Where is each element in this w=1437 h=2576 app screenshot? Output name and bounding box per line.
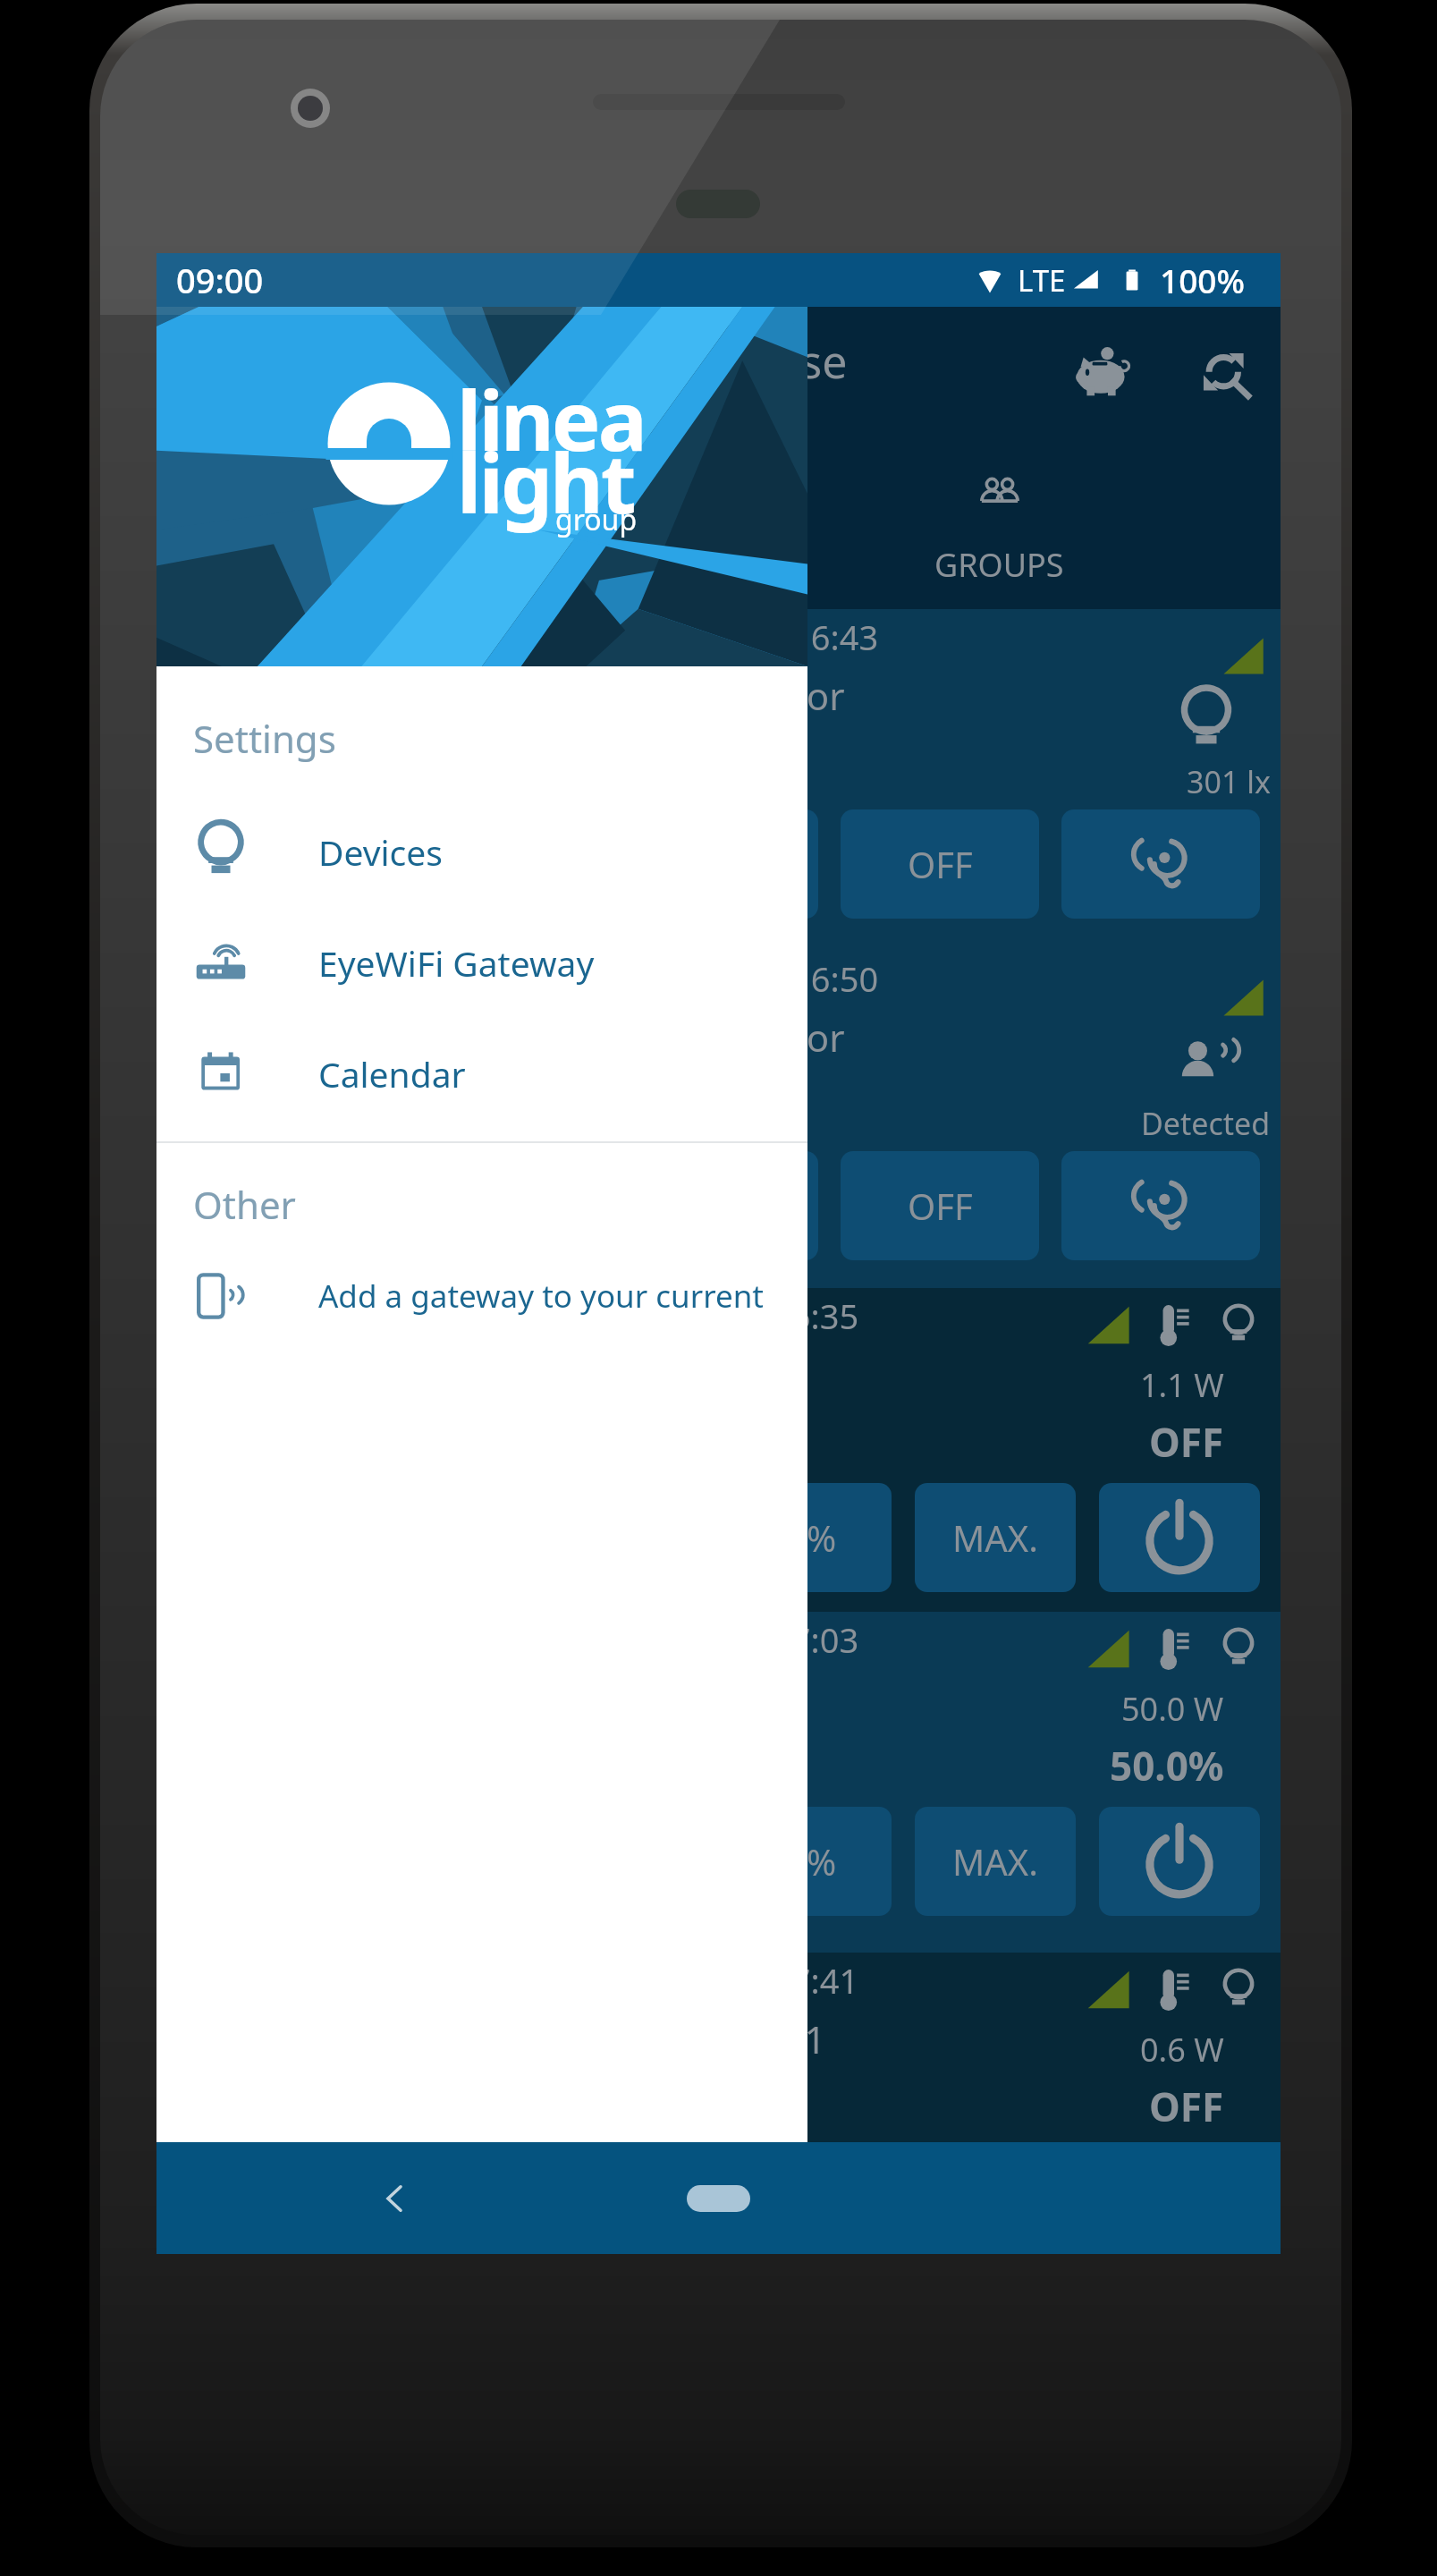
button[interactable]: Refresh: [1183, 333, 1269, 419]
button[interactable]: Home: [687, 2185, 750, 2212]
staticText: OFF: [1149, 1415, 1224, 1469]
button[interactable]: 16:35: [156, 1288, 1281, 1612]
button[interactable]: ON: [177, 1151, 376, 1260]
button[interactable]: Sensitivity: [1061, 1151, 1260, 1260]
staticText: Settings: [193, 713, 336, 764]
staticText: Sensor: [723, 1012, 845, 1063]
button[interactable]: Devices: [156, 796, 807, 907]
button[interactable]: Add a gateway to your current: [156, 1241, 807, 1352]
staticText: LTE: [1018, 260, 1066, 301]
staticText: House: [713, 331, 848, 392]
staticText: Calendar: [318, 1050, 466, 1097]
staticText: ON: [249, 1182, 305, 1230]
staticText: EyeWiFi Gateway: [318, 939, 595, 987]
button[interactable]: ROOMS: [156, 416, 718, 609]
staticText: Sensor: [723, 670, 845, 721]
staticText: 301 lx: [1187, 761, 1271, 802]
button[interactable]: Power: [1099, 1483, 1260, 1592]
button[interactable]: Calendar: [156, 1018, 807, 1129]
button[interactable]: 5%: [731, 1807, 892, 1916]
staticText: 50.0 W: [1121, 1687, 1224, 1731]
button[interactable]: 17:41: [156, 1953, 1281, 2142]
button[interactable]: Power: [1099, 1807, 1260, 1916]
staticText: 5%: [786, 1513, 837, 1562]
staticText: Detected: [1141, 1103, 1271, 1144]
button[interactable]: Back: [359, 2163, 430, 2234]
button[interactable]: OFF: [841, 1151, 1039, 1260]
staticText: GROUPS: [934, 543, 1064, 587]
staticText: 16:35: [772, 1292, 859, 1339]
staticText: 17:03: [772, 1616, 859, 1663]
button[interactable]: 16:50: [156, 951, 1281, 1288]
staticText: group: [555, 500, 638, 539]
button[interactable]: 17:03: [156, 1612, 1281, 1953]
staticText: 100%: [1160, 258, 1246, 302]
staticText: OFF: [908, 1182, 973, 1230]
button[interactable]: GROUPS: [718, 416, 1281, 609]
button[interactable]: EyeWiFi Gateway: [156, 907, 807, 1018]
staticText: MAX.: [952, 1837, 1038, 1885]
button[interactable]: Sensitivity: [1061, 809, 1260, 919]
staticText: 17:41: [772, 1957, 859, 2004]
staticText: 1.1 W: [1140, 1363, 1224, 1407]
staticText: OFF: [1149, 2080, 1224, 2133]
staticText: 16:50: [791, 955, 879, 1002]
staticText: OFF: [908, 840, 973, 888]
button[interactable]: OFF: [841, 809, 1039, 919]
staticText: 16:43: [791, 614, 879, 660]
button[interactable]: AUTO: [399, 809, 597, 919]
staticText: Lampada 1: [630, 2013, 826, 2064]
button[interactable]: 5 min: [620, 1151, 818, 1260]
button[interactable]: 5 min: [620, 809, 818, 919]
button[interactable]: 16:43: [156, 609, 1281, 951]
staticText: ROOMS: [378, 543, 496, 587]
button[interactable]: ON: [177, 809, 376, 919]
staticText: 50.0%: [1110, 1739, 1224, 1792]
button[interactable]: MAX.: [915, 1483, 1076, 1592]
staticText: Other: [193, 1179, 296, 1230]
staticText: linea: [457, 363, 645, 475]
staticText: Devices: [318, 828, 443, 876]
button[interactable]: 5%: [731, 1483, 892, 1592]
staticText: Add a gateway to your current: [318, 1275, 764, 1318]
staticText: 09:00: [176, 257, 264, 303]
staticText: light: [457, 426, 634, 538]
button[interactable]: Savings: [1061, 333, 1146, 419]
staticText: 0.6 W: [1140, 2028, 1224, 2072]
button[interactable]: MAX.: [915, 1807, 1076, 1916]
staticText: MAX.: [952, 1513, 1038, 1562]
staticText: 5%: [786, 1837, 837, 1885]
